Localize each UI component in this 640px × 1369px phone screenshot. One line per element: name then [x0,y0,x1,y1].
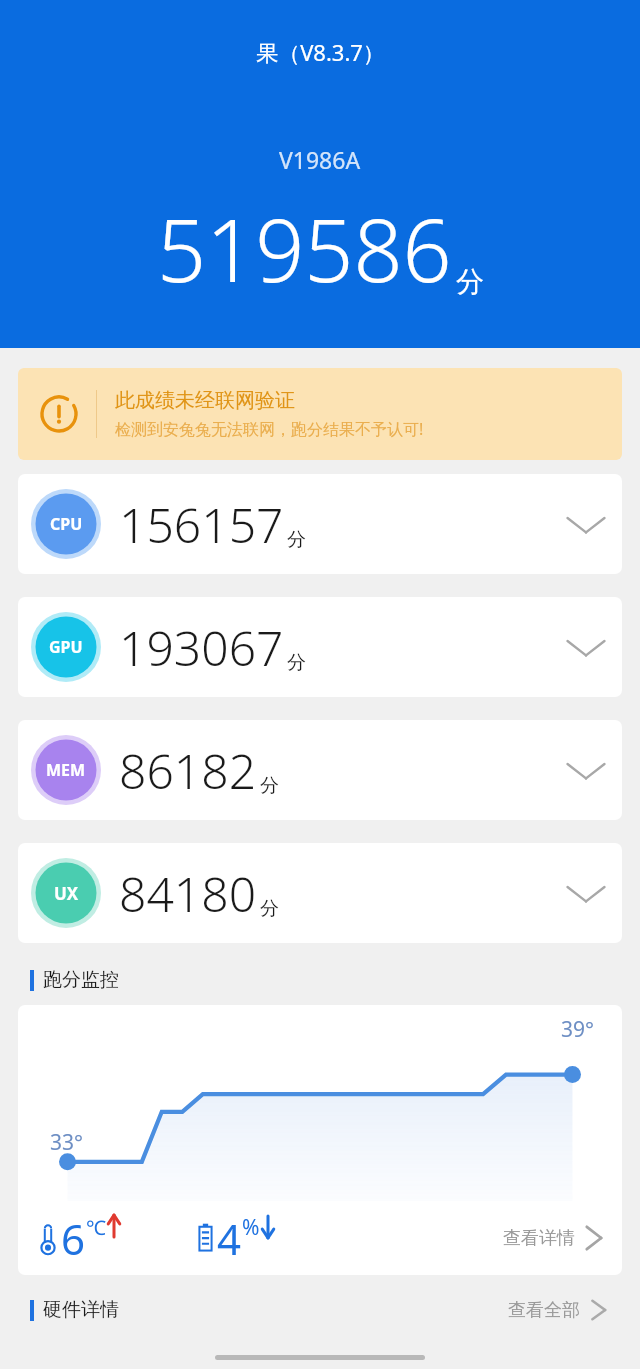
staticText: 193067 [119,615,284,680]
staticText: 84180 [119,861,257,926]
staticText: V1986A [279,144,361,175]
staticText: 检测到安兔兔无法联网，跑分结果不予认可! [115,418,424,440]
staticText: 跑分监控 [43,968,119,992]
button[interactable]: 硬件详情 [30,1293,610,1327]
button[interactable]: Expand MEM [564,755,608,785]
staticText: 33° [50,1128,84,1157]
button[interactable]: Expand UX [564,878,608,908]
button[interactable]: Expand CPU [564,509,608,539]
staticText: 分 [287,528,306,552]
other: 查看详情 [582,1222,606,1254]
staticText: 硬件详情 [43,1298,119,1322]
staticText: 分 [260,774,279,798]
button[interactable]: 84180 [18,843,622,943]
button[interactable]: 86182 [18,720,622,820]
staticText: 查看详情 [503,1227,575,1250]
staticText: 86182 [119,738,257,803]
staticText: 果（V8.3.7） [256,37,385,67]
staticText: 查看全部 [508,1299,580,1322]
staticText: 39° [561,1015,595,1044]
staticText: UX [54,882,79,905]
button[interactable]: Expand GPU [564,632,608,662]
staticText: 分 [456,264,484,299]
button[interactable]: 193067 [18,597,622,697]
staticText: 519586 [157,190,452,307]
staticText: CPU [50,513,83,535]
staticText: GPU [49,636,83,658]
staticText: MEM [46,759,86,781]
staticText: 156157 [119,492,284,557]
staticText: 4 [217,1210,242,1267]
staticText: 分 [287,651,306,675]
button[interactable]: 156157 [18,474,622,574]
other: Battery [196,1222,215,1256]
staticText: 此成绩未经联网验证 [115,388,295,413]
button[interactable]: Warning [18,368,622,460]
staticText: % [242,1213,260,1242]
other: 查看全部 [588,1296,610,1324]
other: Temperature [38,1221,58,1257]
other: Warning [40,395,78,433]
button[interactable]: 查看详情 [503,1222,622,1254]
staticText: ℃ [86,1214,106,1241]
staticText: 分 [260,897,279,921]
staticText: 6 [61,1210,86,1267]
